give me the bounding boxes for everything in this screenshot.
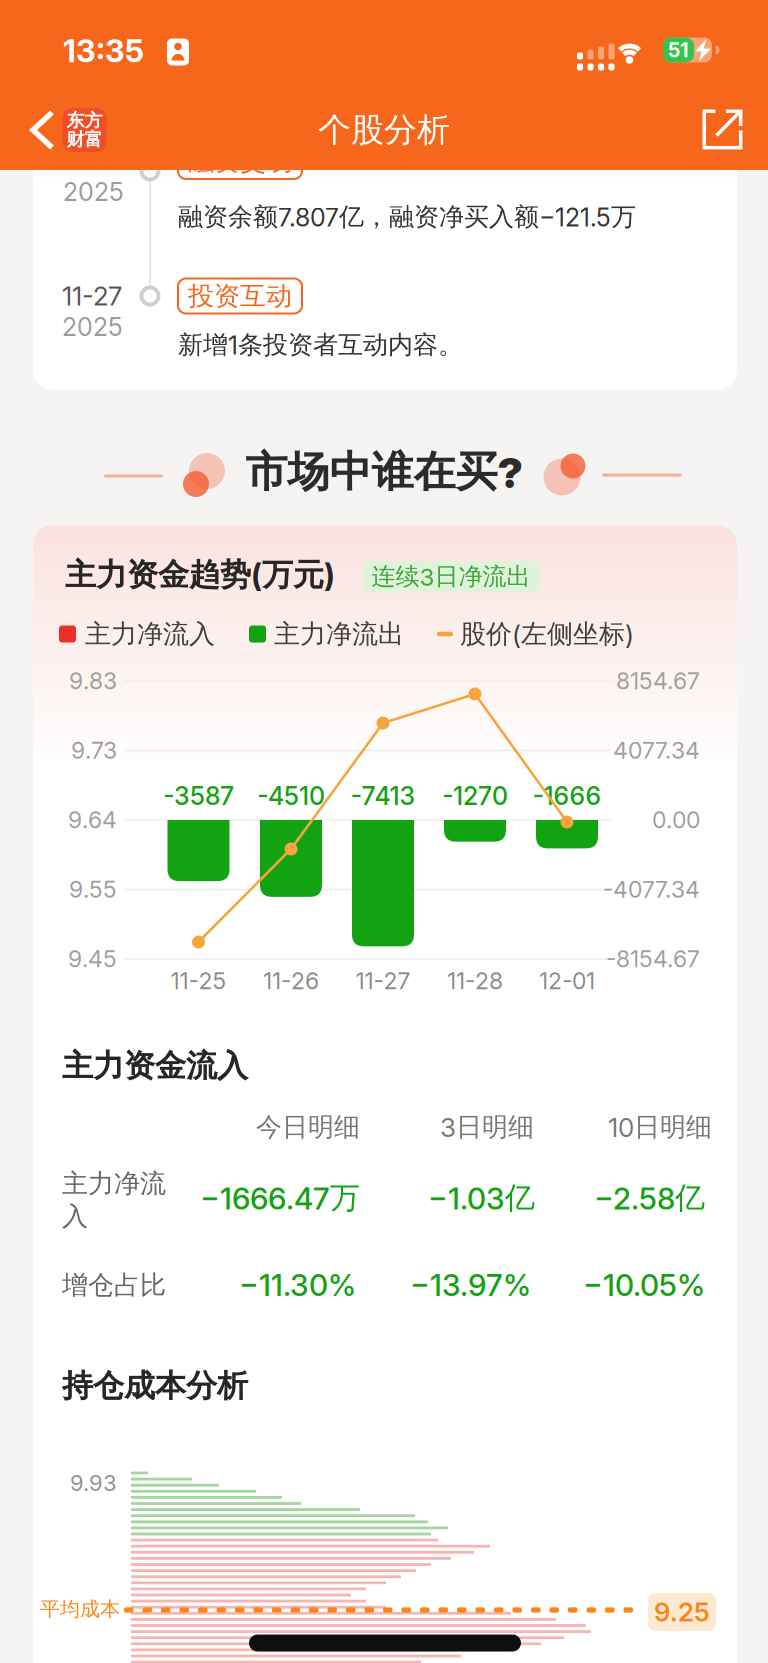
staticText: 0.00	[652, 806, 700, 834]
staticText: 个股分析	[318, 109, 450, 151]
staticText: −11.30%	[239, 1267, 356, 1303]
staticText: −1.03亿	[428, 1179, 535, 1217]
staticText: 东方	[66, 109, 102, 132]
staticText: 11-27	[62, 280, 122, 312]
staticText: 2025	[62, 312, 123, 342]
staticText: 融资余额7.807亿，融资净买入额−121.5万	[178, 201, 636, 233]
staticText: 12-01	[539, 967, 595, 995]
staticText: 8154.67	[616, 667, 700, 695]
staticText: 增仓占比	[62, 1269, 166, 1301]
staticText: 主力净流出	[274, 618, 404, 650]
staticText: 10日明细	[608, 1111, 712, 1143]
staticText: 主力净流入	[85, 618, 215, 650]
staticText: 9.73	[71, 737, 117, 764]
staticText: −1666.47万	[200, 1179, 360, 1217]
staticText: -3587	[163, 781, 234, 811]
staticText: 连续3日净流出	[371, 561, 530, 592]
staticText: 11-25	[170, 967, 226, 995]
staticText: 9.25	[654, 1596, 710, 1628]
staticText: -7413	[350, 781, 415, 811]
staticText: 新增1条投资者互动内容。	[178, 329, 463, 361]
staticText: 持仓成本分析	[62, 1366, 248, 1406]
button[interactable]	[702, 109, 742, 149]
staticText: −10.05%	[583, 1267, 705, 1303]
staticText: 11-28	[447, 967, 503, 995]
staticText: 融资交易	[188, 145, 292, 177]
staticText: 投资互动	[188, 280, 292, 312]
button[interactable]: 东方	[62, 108, 106, 152]
button[interactable]: 投资互动	[178, 278, 302, 313]
staticText: 平均成本	[40, 1596, 120, 1622]
staticText: -1666	[532, 781, 601, 811]
staticText: 主力资金流入	[62, 1046, 248, 1086]
staticText: 9.83	[69, 667, 117, 695]
staticText: 股价(左侧坐标)	[460, 618, 634, 650]
staticText: 9.93	[70, 1470, 117, 1496]
staticText: 11-27	[355, 967, 410, 995]
staticText: 13:35	[63, 32, 144, 70]
staticText: 11-26	[263, 967, 319, 995]
staticText: −13.97%	[410, 1267, 531, 1303]
staticText: 市场中谁在买?	[245, 445, 522, 498]
staticText: 主力资金趋势(万元)	[65, 555, 335, 595]
staticText: 51	[668, 38, 689, 62]
staticText: 9.55	[69, 876, 117, 903]
staticText: −2.58亿	[594, 1179, 705, 1217]
staticText: 9.45	[68, 945, 117, 973]
staticText: 今日明细	[256, 1111, 360, 1143]
staticText: 4077.34	[613, 737, 700, 764]
staticText: -4510	[257, 781, 325, 811]
button[interactable]	[30, 110, 56, 150]
staticText: -8154.67	[606, 945, 700, 973]
staticText: -1270	[442, 781, 508, 811]
staticText: 财富	[66, 128, 102, 151]
staticText: 9.64	[68, 806, 117, 834]
staticText: 主力净流 入	[62, 1167, 166, 1233]
staticText: -4077.34	[603, 876, 700, 903]
staticText: 3日明细	[440, 1111, 534, 1143]
staticText: 2025	[63, 177, 124, 207]
